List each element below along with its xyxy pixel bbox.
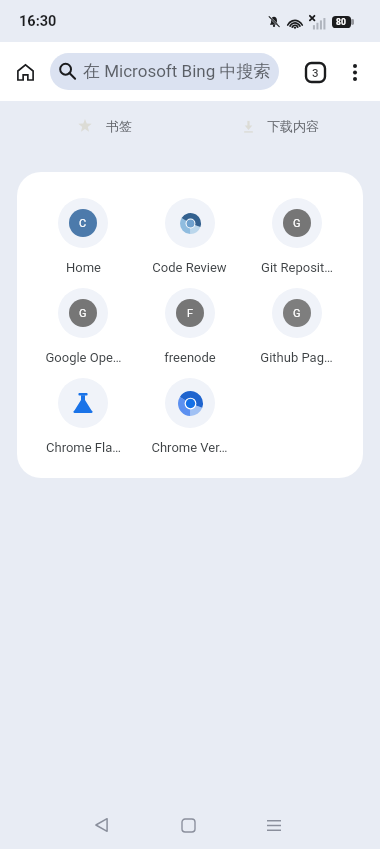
staticText: C [79,217,87,230]
button[interactable]: Tabs, 3 open [298,55,332,89]
button[interactable]: Home [165,802,211,848]
staticText: G [293,307,301,320]
button[interactable]: 下载内容 [241,105,319,147]
button[interactable]: G [30,288,136,378]
staticText: Github Pag… [260,350,333,365]
staticText: G [79,307,87,320]
button[interactable]: F [136,288,243,378]
button[interactable]: 在 Microsoft Bing 中搜索 [50,53,279,90]
button[interactable]: 书签 [78,105,132,147]
staticText: freenode [164,350,216,365]
staticText: 下载内容 [267,118,319,134]
staticText: Chrome Fla… [46,440,121,455]
staticText: Google Ope… [45,350,122,365]
button[interactable]: C [30,198,136,288]
staticText: Home [66,260,101,275]
staticText: Chrome Ver… [151,440,228,455]
button[interactable]: Back [78,802,124,848]
staticText: F [187,307,194,320]
staticText: 16:30 [19,13,57,30]
staticText: Code Review [152,260,227,275]
button[interactable]: Chrome Fla… [30,378,136,468]
staticText: G [293,217,301,230]
button[interactable]: G [243,288,350,378]
button[interactable]: Code Review [136,198,243,288]
staticText: 在 Microsoft Bing 中搜索 [83,61,271,82]
button[interactable]: Home [9,56,41,88]
button[interactable]: Recent apps [251,802,297,848]
staticText: 80 [336,17,346,27]
staticText: Git Reposit… [261,260,333,275]
button[interactable]: More options [339,56,371,88]
button[interactable]: Chrome Ver… [136,378,243,468]
staticText: 书签 [106,118,132,134]
staticText: 3 [312,66,319,79]
button[interactable]: G [243,198,350,288]
